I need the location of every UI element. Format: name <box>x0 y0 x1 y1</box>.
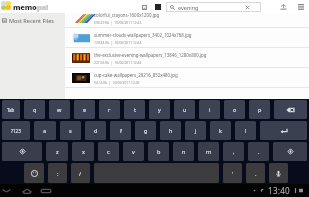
staticText: j <box>195 127 197 134</box>
button[interactable]: Backspace <box>274 100 307 119</box>
button[interactable]: b <box>148 142 169 161</box>
button[interactable]: x <box>72 142 94 161</box>
staticText: colorful_crayons-1600x1200.jpg <box>94 13 160 18</box>
button[interactable]: o <box>224 100 245 119</box>
staticText: ' <box>232 170 234 177</box>
button[interactable]: y <box>149 100 170 119</box>
button[interactable]: Grid view <box>154 3 162 11</box>
staticText: / <box>79 170 82 177</box>
staticText: a <box>43 127 47 134</box>
button[interactable]: f <box>110 121 131 140</box>
staticText: evening <box>178 4 199 11</box>
staticText: : <box>57 170 59 177</box>
staticText: z <box>56 148 59 155</box>
staticText: q <box>33 106 37 113</box>
button[interactable]: s <box>60 121 81 140</box>
button[interactable]: Hide keyboard <box>1 185 12 196</box>
staticText: , <box>233 148 235 155</box>
button[interactable]: a <box>34 121 56 140</box>
button[interactable]: evening <box>166 2 261 12</box>
button[interactable]: h <box>160 121 181 140</box>
button[interactable]: l <box>235 121 256 140</box>
button[interactable]: ' <box>223 163 242 183</box>
button[interactable]: . <box>246 163 265 183</box>
staticText: s <box>69 127 72 134</box>
button[interactable]: n <box>173 142 194 161</box>
button[interactable]: summer-clouds-wallpapers_3402_1024x768.j… <box>65 28 309 47</box>
button[interactable]: colorful_crayons-1600x1200.jpg <box>65 13 309 27</box>
staticText: 129.84 Kb | 10/06/2011 12:44 <box>94 40 142 44</box>
staticText: pal <box>37 2 49 12</box>
staticText: 594.29 Kb | 10/06/2011 12:43 <box>94 20 142 24</box>
button[interactable]: u <box>174 100 195 119</box>
button[interactable]: i <box>199 100 220 119</box>
staticText: ?123 <box>11 128 21 134</box>
button[interactable]: Shift <box>273 142 307 161</box>
staticText: online backup <box>13 12 38 14</box>
button[interactable]: g <box>135 121 156 140</box>
staticText: c <box>107 148 110 155</box>
button[interactable]: t <box>124 100 145 119</box>
button[interactable]: : <box>48 163 67 183</box>
button[interactable]: v <box>123 142 144 161</box>
staticText: cup-cake-wallpapers_29216_852x480.jpg <box>94 72 178 78</box>
staticText: memo <box>13 2 37 12</box>
button[interactable]: Upload <box>279 2 288 11</box>
button[interactable]: cup-cake-wallpapers_29216_852x480.jpg <box>65 68 309 87</box>
staticText: . <box>255 170 257 177</box>
button[interactable]: e <box>74 100 95 119</box>
staticText: b <box>157 148 161 155</box>
button[interactable]: r <box>99 100 120 119</box>
staticText: f <box>120 127 122 134</box>
button[interactable]: c <box>98 142 119 161</box>
staticText: u <box>183 106 187 113</box>
button[interactable]: Most Recent Files <box>0 13 65 27</box>
staticText: m <box>206 148 212 155</box>
button[interactable]: the-exclusive-evening-wallpapers_13846_1… <box>65 48 309 67</box>
button[interactable]: Emoji <box>24 163 44 183</box>
button[interactable]: List view <box>140 3 148 11</box>
button[interactable]: Recent apps <box>40 185 51 196</box>
button[interactable]: Microphone <box>269 163 288 183</box>
button[interactable]: j <box>185 121 206 140</box>
staticText: r <box>108 106 111 113</box>
staticText: d <box>94 127 98 134</box>
button[interactable]: k <box>210 121 231 140</box>
button[interactable]: Enter <box>260 121 307 140</box>
button[interactable]: Home <box>21 185 32 196</box>
staticText: l <box>245 127 247 134</box>
button[interactable]: m <box>198 142 219 161</box>
staticText: 94.14 Kb | 10/06/2011 12:45 <box>94 80 140 84</box>
button[interactable]: q <box>24 100 45 119</box>
button[interactable]: , <box>223 142 244 161</box>
staticText: t <box>134 106 136 113</box>
button[interactable]: Tab <box>2 100 20 119</box>
staticText: the-exclusive-evening-wallpapers_13846_1… <box>94 52 207 58</box>
staticText: x <box>82 148 85 155</box>
staticText: y <box>158 106 161 113</box>
staticText: 13:40 <box>268 185 290 196</box>
button[interactable]: p <box>249 100 270 119</box>
button[interactable]: ?123 <box>2 121 30 140</box>
staticText: g <box>144 127 148 134</box>
button[interactable]: Menu <box>296 2 305 11</box>
button[interactable]: Shift <box>2 142 42 161</box>
staticText: summer-clouds-wallpapers_3402_1024x768.j… <box>94 32 192 38</box>
staticText: p <box>258 106 262 113</box>
button[interactable]: d <box>85 121 106 140</box>
staticText: o <box>233 106 237 113</box>
staticText: 227.56 Kb | 10/06/2011 12:44 <box>94 60 142 64</box>
staticText: h <box>169 127 173 134</box>
button[interactable]: / <box>71 163 90 183</box>
staticText: Most Recent Files <box>9 17 54 24</box>
button[interactable]: . <box>248 142 269 161</box>
staticText: e <box>83 106 87 113</box>
staticText: Tab <box>7 107 15 113</box>
staticText: k <box>219 127 222 134</box>
staticText: . <box>258 148 260 155</box>
button[interactable]: z <box>46 142 68 161</box>
button[interactable]: w <box>49 100 70 119</box>
staticText: w <box>57 106 62 113</box>
staticText: v <box>132 148 135 155</box>
